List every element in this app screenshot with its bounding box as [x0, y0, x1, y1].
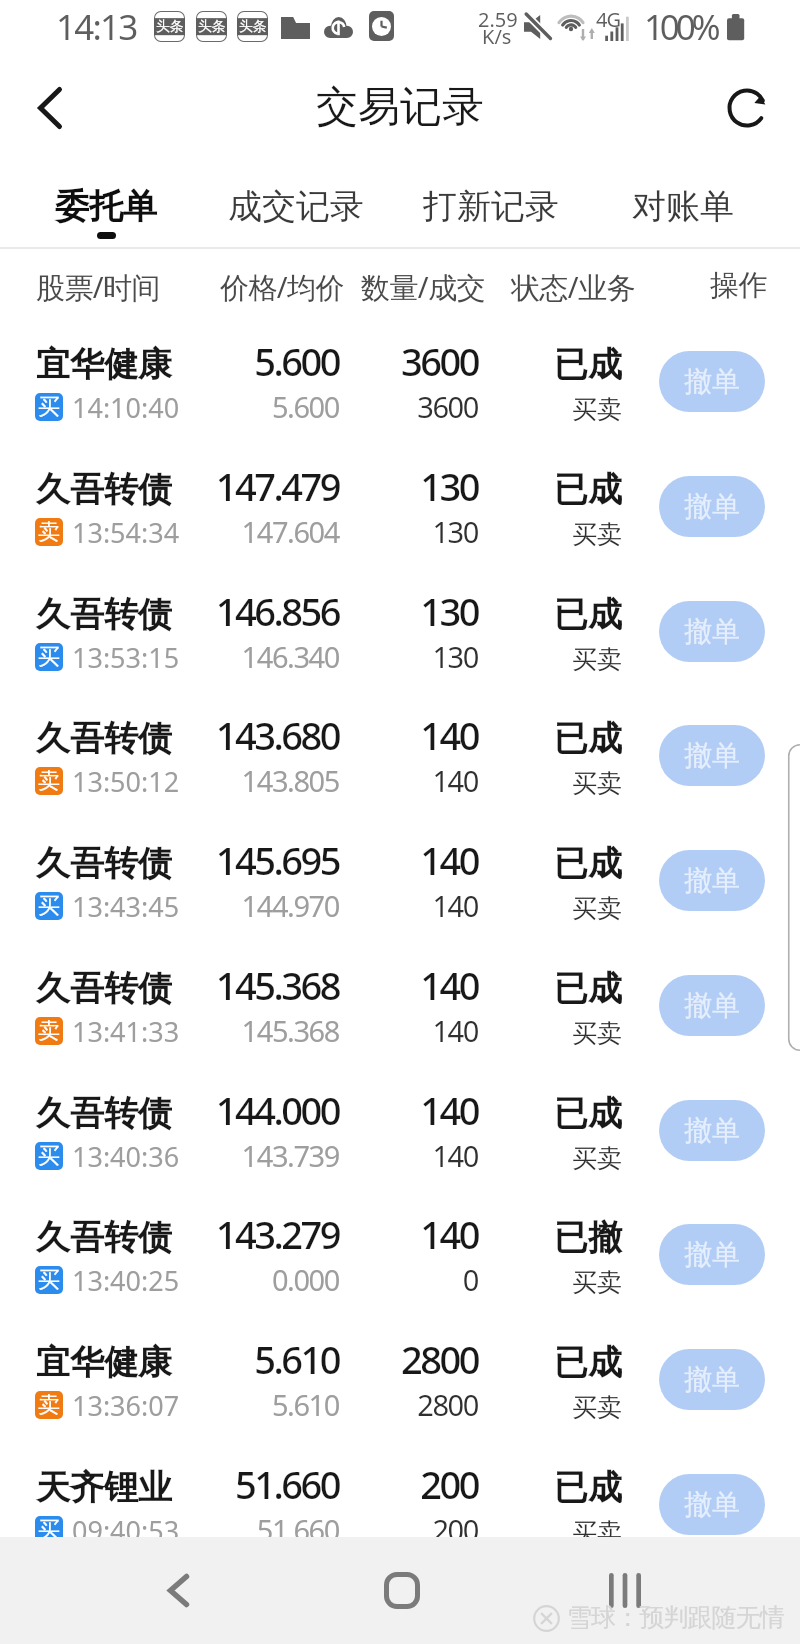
staticText: 130 — [338, 460, 478, 512]
button[interactable]: 撤单 — [659, 725, 765, 786]
staticText: 宜华健康 — [36, 1341, 172, 1384]
staticText: 已成 — [492, 1466, 622, 1509]
staticText: 140 — [338, 1136, 478, 1175]
staticText: 已成 — [492, 1092, 622, 1135]
staticText: 200 — [338, 1510, 478, 1549]
staticText: 14:10:40 — [72, 389, 180, 426]
button[interactable]: 撤单 — [659, 1349, 765, 1410]
staticText: 久吾转债 — [36, 593, 172, 636]
button[interactable]: 刷新 — [707, 58, 787, 158]
staticText: 13:53:15 — [72, 639, 180, 676]
button[interactable]: 撤单 — [659, 1100, 765, 1161]
button[interactable]: 主屏幕 — [357, 1537, 447, 1644]
staticText: 14:13 — [56, 3, 137, 51]
button[interactable]: 返回 — [6, 58, 94, 158]
staticText: 13:40:36 — [72, 1138, 180, 1175]
button[interactable]: 撤单 — [659, 1474, 765, 1535]
button[interactable]: 返回 — [133, 1537, 223, 1644]
button[interactable]: 久吾转债 — [0, 585, 800, 708]
staticText: 143.805 — [139, 761, 339, 800]
staticText: 140 — [338, 1208, 478, 1260]
staticText: 卖 — [38, 1391, 60, 1419]
staticText: 买卖 — [492, 394, 622, 425]
button[interactable]: 最近任务 — [580, 1537, 670, 1644]
staticText: 头条 — [239, 18, 266, 36]
staticText: 撤单 — [684, 1113, 740, 1148]
staticText: K/s — [482, 23, 512, 50]
button[interactable]: 久吾转债 — [0, 1084, 800, 1207]
staticText: 状态/业务 — [511, 267, 635, 307]
staticText: 买 — [38, 1266, 60, 1294]
staticText: 买卖 — [492, 1018, 622, 1049]
staticText: 久吾转债 — [36, 842, 172, 885]
staticText: 已撤 — [492, 1216, 622, 1259]
staticText: 146.340 — [139, 637, 339, 676]
button[interactable]: 撤单 — [659, 1224, 765, 1285]
staticText: 久吾转债 — [36, 1216, 172, 1259]
staticText: 140 — [338, 1011, 478, 1050]
button[interactable]: 久吾转债 — [0, 959, 800, 1082]
staticText: 股票/时间 — [36, 267, 160, 307]
staticText: 宜华健康 — [36, 343, 172, 386]
button[interactable]: 委托单 — [15, 158, 197, 247]
staticText: 买 — [38, 892, 60, 920]
button[interactable]: 撤单 — [659, 601, 765, 662]
staticText: 久吾转债 — [36, 967, 172, 1010]
staticText: 撤单 — [684, 364, 740, 399]
staticText: 已成 — [492, 1341, 622, 1384]
staticText: 13:43:45 — [72, 888, 180, 925]
staticText: 卖 — [38, 767, 60, 795]
staticText: 已成 — [492, 717, 622, 760]
staticText: 143.279 — [139, 1208, 339, 1260]
staticText: 买 — [38, 643, 60, 671]
staticText: 卖 — [38, 518, 60, 546]
staticText: 买卖 — [492, 519, 622, 550]
staticText: 买 — [38, 393, 60, 421]
staticText: 143.680 — [139, 709, 339, 761]
staticText: 头条 — [198, 18, 225, 36]
staticText: 买卖 — [492, 1392, 622, 1423]
staticText: 4G — [596, 6, 620, 33]
staticText: 操作 — [710, 267, 767, 304]
staticText: 2800 — [338, 1385, 478, 1424]
staticText: 130 — [338, 637, 478, 676]
button[interactable]: 成交记录 — [205, 158, 387, 247]
staticText: 5.610 — [139, 1333, 339, 1385]
button[interactable]: 宜华健康 — [0, 335, 800, 458]
button[interactable]: 对账单 — [592, 158, 774, 247]
staticText: 买卖 — [492, 893, 622, 924]
staticText: 144.970 — [139, 886, 339, 925]
staticText: 200 — [338, 1458, 478, 1510]
staticText: 140 — [338, 1084, 478, 1136]
staticText: 5.600 — [139, 387, 339, 426]
staticText: 0 — [338, 1260, 478, 1299]
staticText: 买卖 — [492, 1143, 622, 1174]
button[interactable]: 撤单 — [659, 850, 765, 911]
staticText: 撤单 — [684, 1362, 740, 1397]
staticText: 已成 — [492, 468, 622, 511]
staticText: 147.479 — [139, 460, 339, 512]
staticText: 0.000 — [139, 1260, 339, 1299]
staticText: 09:40:53 — [72, 1512, 180, 1549]
staticText: 价格/均价 — [220, 267, 344, 307]
button[interactable]: 打新记录 — [400, 158, 582, 247]
staticText: 2800 — [338, 1333, 478, 1385]
staticText: 144.000 — [139, 1084, 339, 1136]
staticText: 13:40:25 — [72, 1262, 180, 1299]
staticText: 5.610 — [139, 1385, 339, 1424]
button[interactable]: 宜华健康 — [0, 1333, 800, 1456]
staticText: 已成 — [492, 343, 622, 386]
staticText: 委托单 — [55, 185, 157, 228]
button[interactable]: 天齐锂业 — [0, 1458, 800, 1581]
button[interactable]: 久吾转债 — [0, 834, 800, 957]
button[interactable]: 久吾转债 — [0, 709, 800, 832]
button[interactable]: 撤单 — [659, 975, 765, 1036]
button[interactable]: 撤单 — [659, 476, 765, 537]
button[interactable]: 久吾转债 — [0, 1208, 800, 1331]
staticText: 2.59 — [478, 6, 518, 33]
staticText: 140 — [338, 959, 478, 1011]
staticText: 13:54:34 — [72, 514, 180, 551]
button[interactable]: 久吾转债 — [0, 460, 800, 583]
staticText: 买 — [38, 1142, 60, 1170]
button[interactable]: 撤单 — [659, 351, 765, 412]
